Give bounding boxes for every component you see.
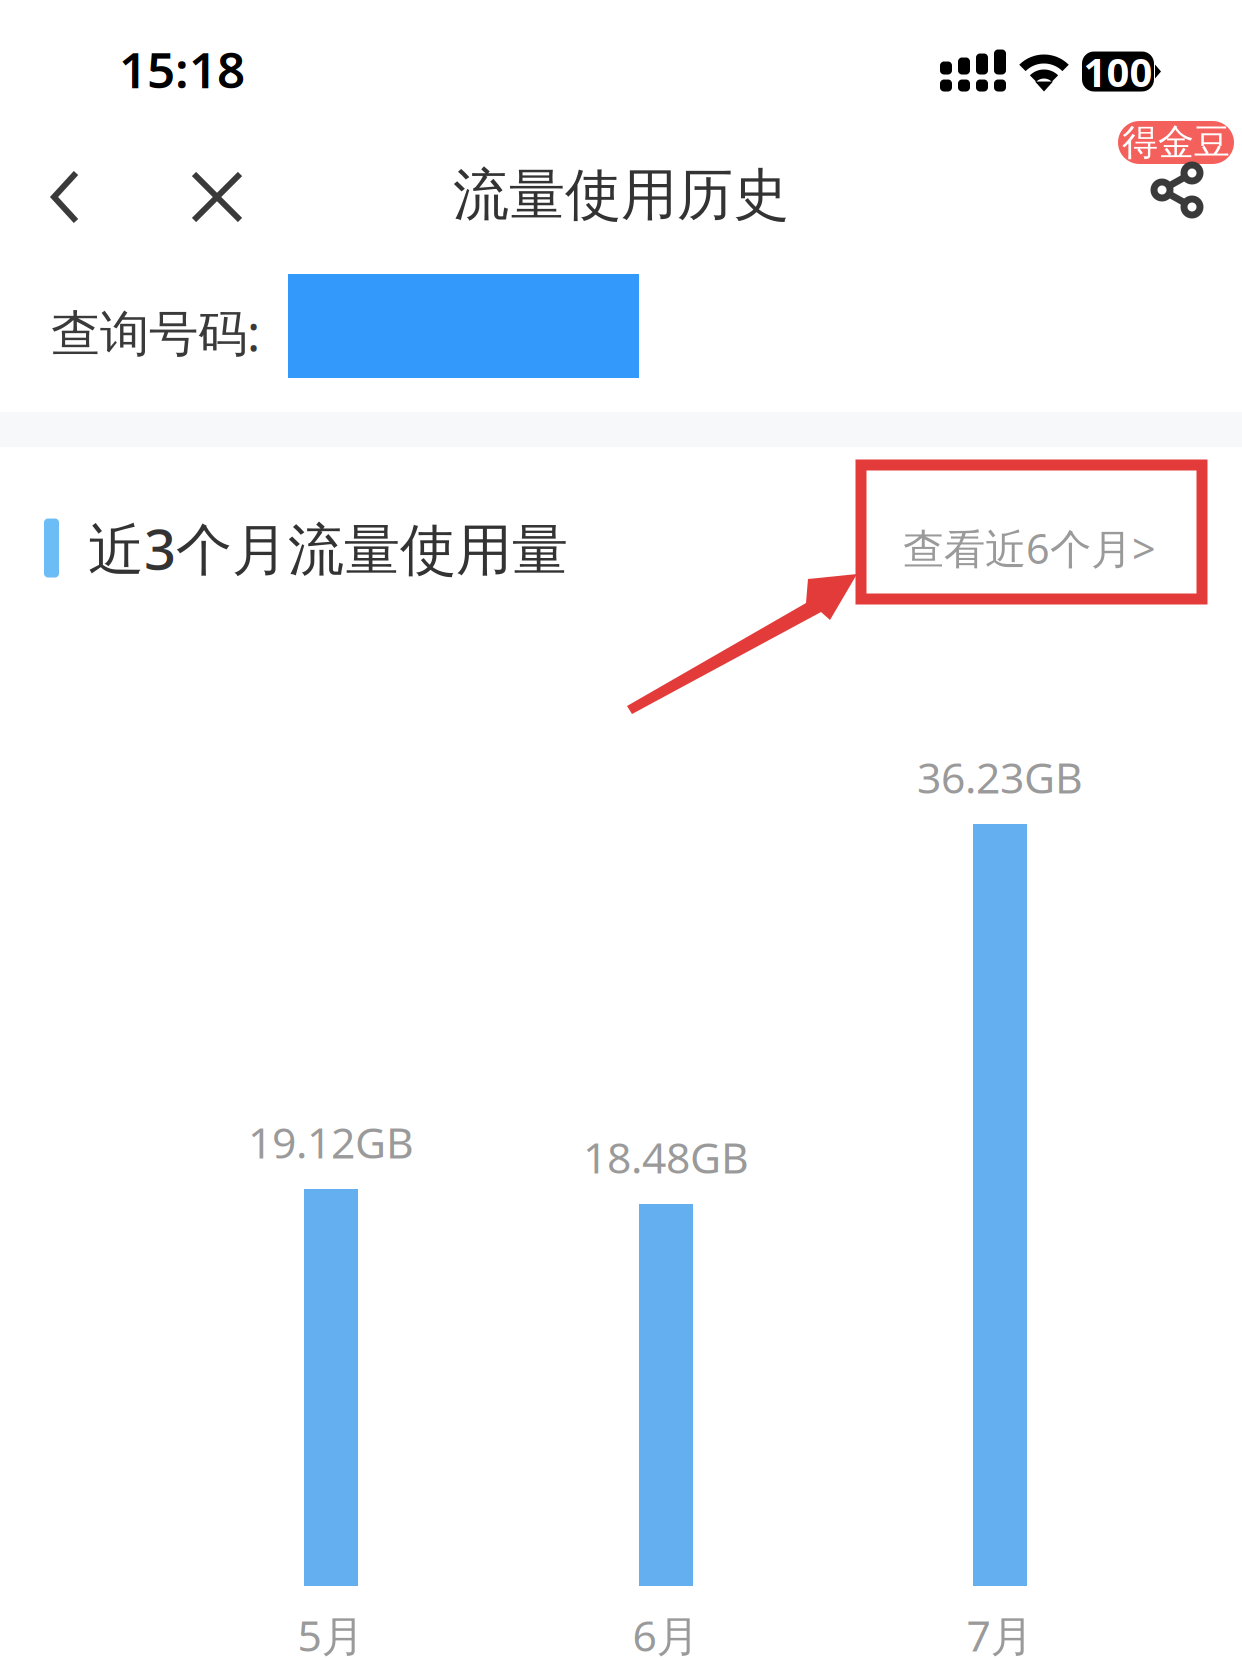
staticText: 5月 <box>297 1607 364 1660</box>
staticText: 36.23GB <box>917 749 1083 805</box>
staticText: 100 <box>1083 45 1152 98</box>
staticText: 7月 <box>966 1607 1033 1660</box>
button[interactable]: Share <box>1118 138 1234 242</box>
staticText: 19.12GB <box>248 1114 414 1170</box>
button[interactable]: 查看近6个月> <box>861 487 1198 609</box>
button[interactable]: Close <box>175 146 259 234</box>
staticText: 近3个月流量使用量 <box>88 511 568 585</box>
staticText: 18.48GB <box>583 1129 749 1185</box>
button[interactable]: Back <box>28 145 103 235</box>
staticText: 15:18 <box>119 36 245 102</box>
staticText: 得金豆 <box>1122 120 1230 165</box>
staticText: 查看近6个月> <box>903 521 1156 575</box>
staticText: 查询号码: <box>51 299 260 365</box>
staticText: 6月 <box>632 1607 699 1660</box>
staticText: 流量使用历史 <box>453 161 789 229</box>
